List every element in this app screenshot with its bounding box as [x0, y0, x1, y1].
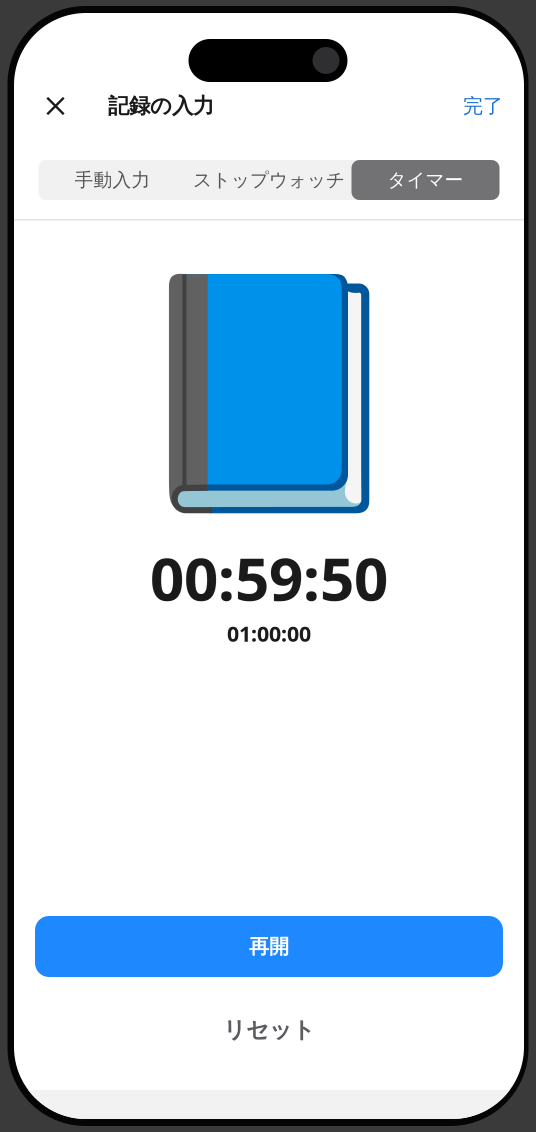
button[interactable]: リセット	[35, 1018, 503, 1042]
staticText: 記録の入力	[108, 93, 214, 119]
staticText: 手動入力	[74, 168, 150, 191]
button[interactable]: 手動入力	[38, 160, 186, 200]
staticText: 📘	[128, 264, 410, 523]
staticText: 00:59:50	[150, 538, 388, 617]
button[interactable]: ストップウォッチ	[186, 160, 351, 200]
staticText: リセット	[223, 1016, 315, 1044]
staticText: ストップウォッチ	[193, 168, 345, 191]
staticText: 完了	[463, 94, 503, 118]
staticText: 再開	[249, 934, 289, 959]
staticText: 01:00:00	[227, 619, 311, 648]
button[interactable]: 閉じる	[35, 88, 76, 124]
button[interactable]: 完了	[463, 88, 503, 124]
button[interactable]: タイマー	[351, 160, 499, 200]
staticText: タイマー	[387, 168, 463, 191]
button[interactable]: 再開	[35, 916, 503, 977]
